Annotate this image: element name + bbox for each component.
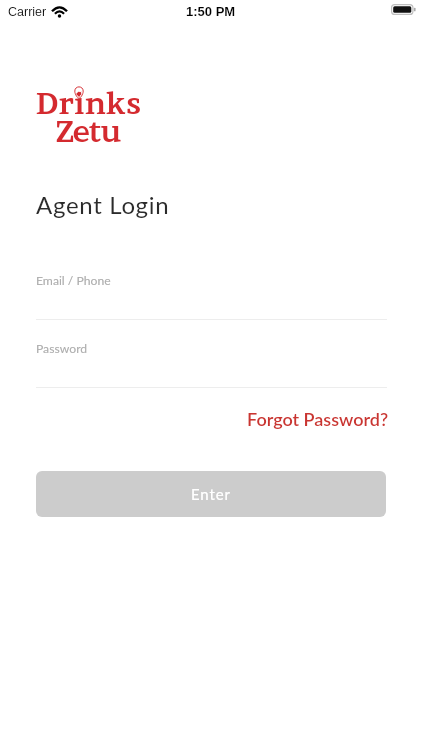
staticText: Forgot Password? (247, 408, 389, 430)
staticText: Email / Phone (36, 273, 111, 288)
staticText: Password (36, 341, 88, 356)
button[interactable]: Enter (36, 471, 386, 517)
button[interactable]: Password (36, 333, 387, 388)
staticText: Agent Login (36, 190, 170, 219)
staticText: Carrier (8, 5, 47, 19)
staticText: 1:50 PM (186, 4, 236, 19)
button[interactable]: Email / Phone (36, 265, 387, 320)
button[interactable]: Forgot Password? (245, 404, 391, 434)
other: Wi-Fi (52, 7, 67, 18)
staticText: Drinks (36, 86, 142, 121)
staticText: Enter (191, 485, 231, 503)
staticText: Zetu (56, 114, 121, 149)
other: Battery full (391, 4, 416, 15)
